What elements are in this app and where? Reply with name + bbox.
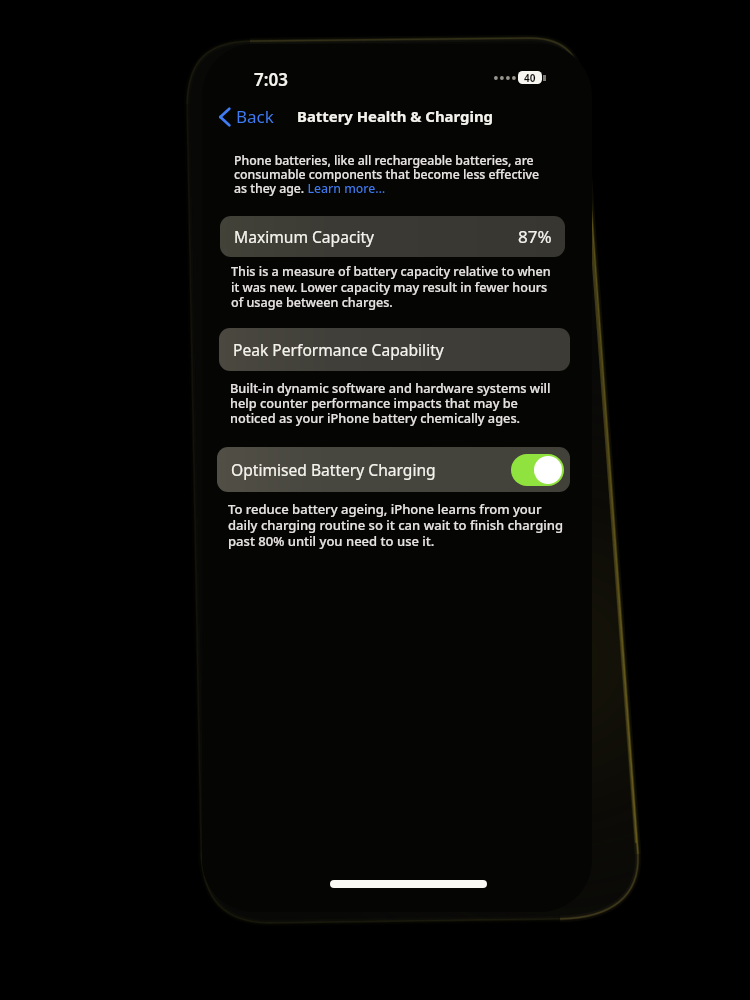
staticText: 40 [524, 71, 536, 84]
button[interactable]: Peak Performance Capability [219, 328, 570, 371]
button[interactable]: Back [213, 101, 280, 132]
staticText: Battery Health & Charging [297, 106, 493, 126]
button[interactable]: Maximum Capacity [220, 216, 565, 257]
staticText: Built-in dynamic software and hardware s… [230, 379, 590, 427]
button[interactable]: Optimised Battery Charging [217, 447, 570, 492]
staticText: 87% [518, 225, 552, 248]
staticText: 7:03 [254, 68, 288, 91]
staticText: Maximum Capacity [234, 226, 375, 247]
button[interactable]: Phone batteries, like all rechargeable b… [234, 152, 554, 197]
staticText: Optimised Battery Charging [231, 459, 436, 480]
staticText: This is a measure of battery capacity re… [231, 263, 591, 310]
staticText: Peak Performance Capability [233, 339, 444, 360]
staticText: Back [236, 105, 274, 128]
staticText: To reduce battery ageing, iPhone learns … [228, 500, 588, 550]
button[interactable]: Optimised Battery Charging toggle [511, 454, 564, 486]
